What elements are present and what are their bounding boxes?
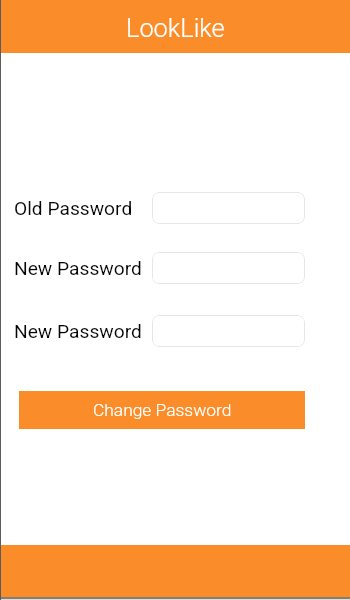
staticText: Change Password: [93, 400, 232, 420]
staticText: New Password: [14, 320, 142, 343]
staticText: Old Password: [14, 197, 133, 220]
button[interactable]: LookLike: [0, 0, 350, 53]
button[interactable]: New Password input field: [152, 315, 305, 347]
staticText: New Password: [14, 257, 142, 280]
button[interactable]: Change Password: [19, 391, 305, 429]
button[interactable]: Bottom navigation bar: [0, 545, 350, 597]
staticText: LookLike: [126, 13, 225, 43]
button[interactable]: New Password input field: [152, 252, 305, 284]
button[interactable]: Old Password input field: [152, 192, 305, 224]
